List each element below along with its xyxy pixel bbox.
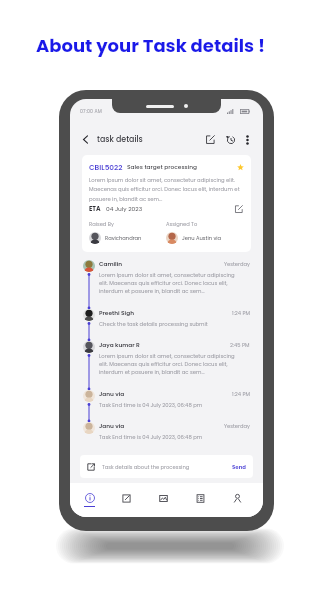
button[interactable]: Profile xyxy=(219,483,256,517)
staticText: Sales target processing xyxy=(127,163,198,171)
staticText: Lorem Ipsum dolor sit amet, consectetur … xyxy=(89,176,244,203)
staticText: Task End time is 04 July 2023, 06:48 pm xyxy=(99,433,203,440)
staticText: Preethi Sigh xyxy=(99,309,134,317)
staticText: 1:24 PM xyxy=(232,310,250,317)
button[interactable]: Jaya kumar R xyxy=(83,341,250,390)
button[interactable]: More options xyxy=(241,133,254,146)
staticText: Janu via xyxy=(99,422,125,430)
staticText: Check the task details processing submit xyxy=(99,320,208,327)
button[interactable]: Edit ETA xyxy=(233,203,244,214)
button[interactable]: Preethi Sigh xyxy=(83,309,250,341)
staticText: Send xyxy=(232,463,246,471)
button[interactable]: Tasks xyxy=(182,483,219,517)
button[interactable]: Notes xyxy=(108,483,145,517)
button[interactable]: Info xyxy=(71,483,108,517)
staticText: Task details about the processing xyxy=(102,464,190,471)
staticText: Assigned To xyxy=(166,221,198,228)
staticText: CBIL5022 xyxy=(89,162,123,172)
staticText: Yesterday xyxy=(224,261,250,268)
staticText: Camilin xyxy=(99,260,123,268)
staticText: 1:24 PM xyxy=(232,391,250,398)
staticText: Lorem ipsum dolor sit amet, consectetur … xyxy=(99,352,236,376)
staticText: Jenu Austin via xyxy=(182,235,222,242)
staticText: ETA xyxy=(89,204,101,213)
staticText: 2:45 PM xyxy=(230,342,250,349)
button[interactable]: Camilin xyxy=(83,260,250,309)
staticText: Jaya kumar R xyxy=(99,341,140,349)
button[interactable]: CBIL5022 xyxy=(82,155,251,252)
staticText: 04 July 2023 xyxy=(106,205,143,213)
staticText: Lorem Ipsum dolor sit amet, consectetur … xyxy=(99,271,236,295)
button[interactable]: Back xyxy=(78,132,93,147)
staticText: About your Task details ! xyxy=(36,33,265,58)
staticText: task details xyxy=(97,134,143,145)
button[interactable]: History xyxy=(223,132,238,147)
button[interactable]: Edit xyxy=(203,132,218,147)
staticText: Ravichandran xyxy=(105,235,142,242)
button[interactable]: Attachments xyxy=(145,483,182,517)
staticText: Task End time is 04 July 2023, 06:48 pm xyxy=(99,401,203,408)
button[interactable]: Janu via xyxy=(83,422,250,454)
staticText: Yesterday xyxy=(224,423,250,430)
staticText: 07:00 AM xyxy=(80,108,103,114)
button[interactable]: Janu via xyxy=(83,390,250,422)
button[interactable]: Task details about the processing xyxy=(80,455,253,478)
staticText: Janu via xyxy=(99,390,125,398)
staticText: Raised By xyxy=(89,221,114,228)
